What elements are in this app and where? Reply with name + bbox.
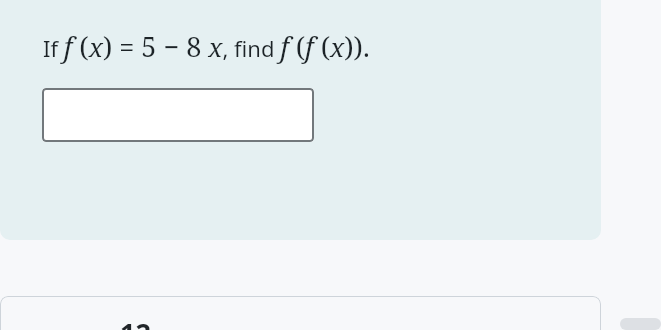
button[interactable]: Question xyxy=(0,296,601,330)
staticText: 12 xyxy=(120,314,151,330)
button[interactable]: Answer input field xyxy=(42,88,314,142)
staticText: If f (x) = 5 − 8 x, find f (f (x)). xyxy=(43,28,370,65)
